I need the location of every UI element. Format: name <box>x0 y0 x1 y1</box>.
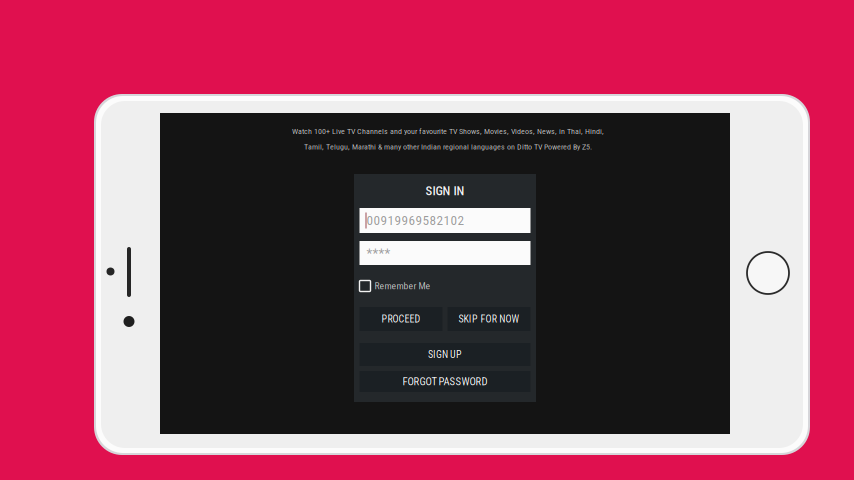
staticText: **** <box>366 245 390 261</box>
button[interactable]: SIGN UP <box>359 343 530 366</box>
staticText: Watch 100+ Live TV Channels and your fav… <box>292 127 604 136</box>
button[interactable]: PROCEED <box>359 307 442 331</box>
staticText: 00919969582102 <box>366 213 464 228</box>
staticText: SIGN UP <box>428 349 462 360</box>
staticText: Tamil, Telugu, Marathi & many other Indi… <box>304 142 592 151</box>
staticText: Remember Me <box>374 280 430 292</box>
button[interactable]: SKIP FOR NOW <box>447 307 530 331</box>
button[interactable]: Remember Me <box>359 280 530 292</box>
staticText: SKIP FOR NOW <box>458 313 520 325</box>
button[interactable]: 00919969582102 <box>359 208 530 233</box>
button[interactable]: Home <box>747 252 789 294</box>
staticText: SIGN IN <box>425 184 464 198</box>
staticText: FORGOT PASSWORD <box>402 375 487 388</box>
staticText: PROCEED <box>381 313 420 325</box>
button[interactable]: Password <box>359 241 530 265</box>
button[interactable]: FORGOT PASSWORD <box>359 371 530 392</box>
